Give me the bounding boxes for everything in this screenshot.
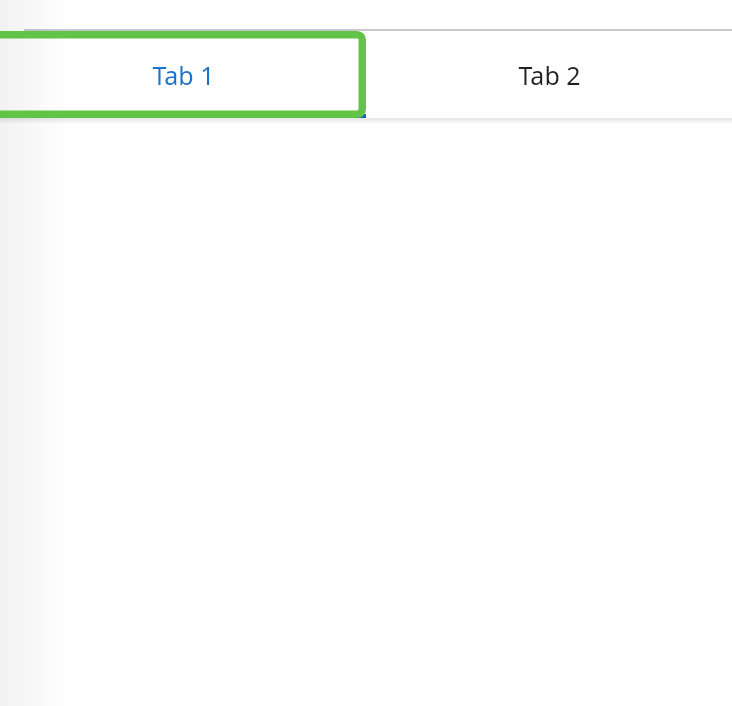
staticText: Tab 2 (518, 58, 581, 92)
button[interactable]: Tab 1 (0, 31, 366, 118)
button[interactable]: Tab 2 (366, 31, 732, 118)
staticText: Tab 1 (152, 58, 215, 92)
other: Tab 1 focused (0, 31, 366, 118)
